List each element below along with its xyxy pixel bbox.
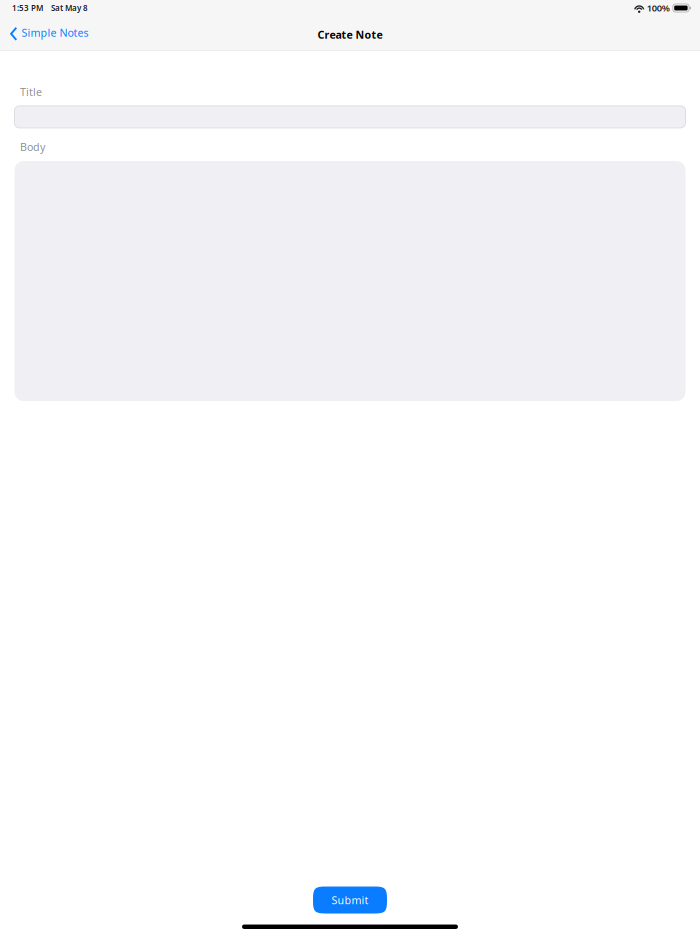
- staticText: 100%: [647, 2, 670, 14]
- staticText: 1:53 PM: [12, 3, 43, 13]
- staticText: Title: [20, 85, 42, 99]
- button[interactable]: Simple Notes: [0, 22, 96, 47]
- button[interactable]: Title text field: [0, 99, 700, 128]
- button[interactable]: Body text editor: [0, 154, 700, 401]
- staticText: Create Note: [317, 27, 382, 42]
- staticText: Submit: [331, 893, 368, 907]
- staticText: Sat May 8: [51, 3, 88, 13]
- staticText: Body: [20, 140, 45, 154]
- staticText: Simple Notes: [21, 25, 88, 40]
- button[interactable]: Submit: [313, 886, 387, 913]
